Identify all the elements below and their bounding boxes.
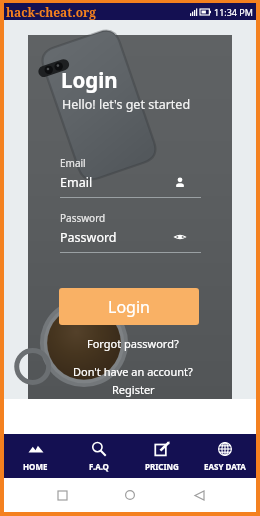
staticText: Login xyxy=(108,296,150,318)
button[interactable]: Account xyxy=(171,173,189,191)
staticText: F.A.Q xyxy=(89,461,109,472)
staticText: Forgot password? xyxy=(87,336,179,351)
button[interactable]: Home xyxy=(119,484,141,506)
button[interactable]: Back xyxy=(188,484,210,506)
staticText: hack-cheat.org xyxy=(6,4,97,20)
button[interactable]: EASY DATA xyxy=(193,434,256,478)
staticText: Password xyxy=(60,211,106,225)
button[interactable]: Recent apps xyxy=(51,484,73,506)
button[interactable]: Login xyxy=(59,288,199,325)
button[interactable]: PRICING xyxy=(130,434,193,478)
staticText: 11:34 PM xyxy=(214,6,253,18)
staticText: Register xyxy=(112,382,155,397)
staticText: Login xyxy=(61,66,118,94)
button[interactable]: HOME xyxy=(4,434,67,478)
staticText: Don't have an account? xyxy=(73,364,193,379)
button[interactable]: Show password xyxy=(171,228,189,246)
staticText: Email xyxy=(60,156,86,170)
staticText: Hello! let's get started xyxy=(62,96,191,113)
staticText: PRICING xyxy=(145,461,179,472)
button[interactable]: F.A.Q xyxy=(67,434,130,478)
staticText: Password xyxy=(60,229,183,246)
staticText: HOME xyxy=(23,461,48,472)
button[interactable]: Register xyxy=(63,382,203,397)
staticText: Email xyxy=(60,174,183,191)
button[interactable]: Forgot password? xyxy=(63,336,203,351)
staticText: EASY DATA xyxy=(204,461,246,472)
